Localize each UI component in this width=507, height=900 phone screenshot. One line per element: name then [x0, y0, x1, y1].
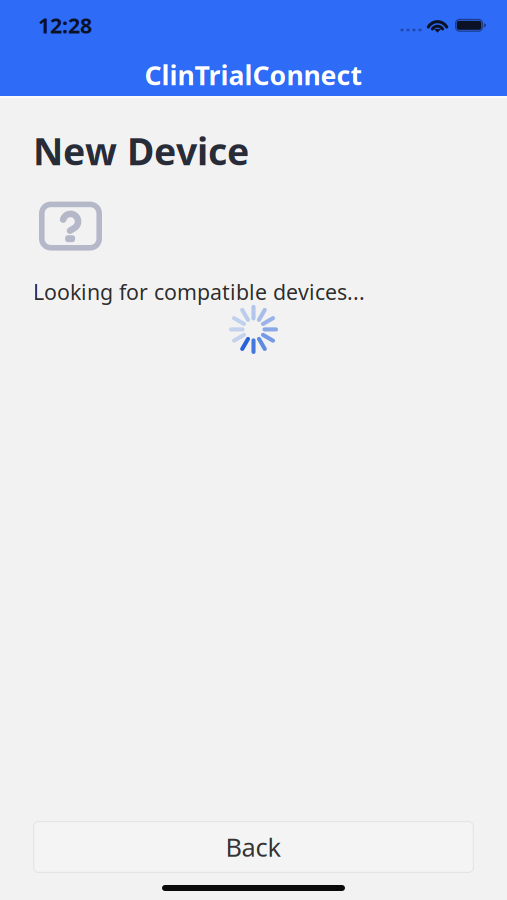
button[interactable]: Back: [33, 821, 474, 873]
staticText: Looking for compatible devices...: [33, 278, 365, 306]
staticText: ClinTrialConnect: [144, 57, 362, 93]
staticText: 12:28: [38, 11, 92, 39]
staticText: New Device: [33, 126, 249, 176]
staticText: Back: [225, 830, 281, 864]
